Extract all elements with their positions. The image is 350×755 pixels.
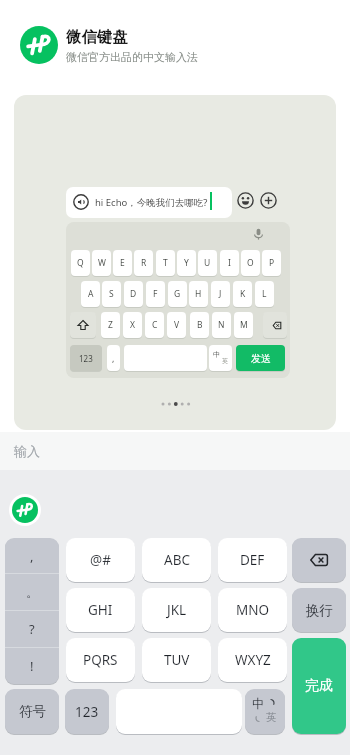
staticText: H <box>195 288 202 300</box>
button[interactable]: WXYZ <box>218 638 287 682</box>
button[interactable]: 。 <box>5 574 59 610</box>
button[interactable]: Q <box>71 250 90 276</box>
button[interactable]: ABC <box>142 538 211 582</box>
staticText: 中 <box>213 350 220 359</box>
staticText: ABC <box>164 551 190 569</box>
button[interactable]: N <box>212 312 231 338</box>
button[interactable]: MNO <box>218 588 287 632</box>
staticText: 微信键盘 <box>66 28 129 47</box>
staticText: I <box>228 257 231 269</box>
staticText: W <box>98 257 106 269</box>
button[interactable]: G <box>168 281 187 307</box>
button[interactable]: P <box>262 250 281 276</box>
button[interactable]: D <box>124 281 143 307</box>
button[interactable]: ? <box>5 611 59 647</box>
button[interactable]: PQRS <box>66 638 135 682</box>
staticText: U <box>204 257 211 269</box>
button[interactable]: I <box>220 250 239 276</box>
staticText: E <box>120 257 125 269</box>
staticText: 发送 <box>251 352 271 365</box>
staticText: WXYZ <box>235 651 271 669</box>
button[interactable]: , <box>107 345 120 371</box>
staticText: N <box>218 319 225 331</box>
button[interactable]: T <box>156 250 175 276</box>
staticText: MNO <box>236 601 270 619</box>
button[interactable]: O <box>241 250 260 276</box>
button[interactable]: DEF <box>218 538 287 582</box>
staticText: V <box>174 319 180 331</box>
staticText: Z <box>108 319 113 331</box>
staticText: 英 <box>222 357 228 365</box>
button[interactable]: 123 <box>65 689 109 734</box>
button[interactable]: @# <box>66 538 135 582</box>
button[interactable] <box>12 497 38 523</box>
button[interactable]: F <box>146 281 165 307</box>
button[interactable]: 换行 <box>292 588 346 632</box>
button[interactable]: K <box>233 281 252 307</box>
staticText: O <box>247 257 254 269</box>
button[interactable]: A <box>81 281 100 307</box>
button[interactable]: U <box>198 250 217 276</box>
staticText: T <box>163 257 168 269</box>
staticText: TUV <box>164 651 190 669</box>
button[interactable]: V <box>167 312 186 338</box>
button[interactable]: X <box>123 312 142 338</box>
button[interactable] <box>292 538 346 582</box>
button[interactable]: M <box>234 312 253 338</box>
staticText: @# <box>90 551 111 569</box>
staticText: 微信官方出品的中文输入法 <box>66 50 198 64</box>
button[interactable]: JKL <box>142 588 211 632</box>
button[interactable]: L <box>255 281 274 307</box>
staticText: , <box>112 352 115 364</box>
button[interactable]: J <box>211 281 230 307</box>
button[interactable] <box>263 312 287 338</box>
button[interactable]: Y <box>177 250 196 276</box>
staticText: S <box>109 288 114 300</box>
button[interactable] <box>70 312 96 338</box>
staticText: A <box>88 288 94 300</box>
button[interactable]: H <box>189 281 208 307</box>
button[interactable]: 符号 <box>5 689 59 734</box>
button[interactable]: , <box>5 538 59 573</box>
staticText: , <box>30 547 34 565</box>
button[interactable]: TUV <box>142 638 211 682</box>
button[interactable] <box>20 26 58 64</box>
staticText: 。 <box>26 584 39 600</box>
staticText: 123 <box>75 703 99 721</box>
button[interactable]: 发送 <box>236 345 285 371</box>
button[interactable]: 中 <box>209 345 232 371</box>
staticText: DEF <box>240 551 265 569</box>
button[interactable]: R <box>134 250 153 276</box>
staticText: GHI <box>88 601 113 619</box>
staticText: 123 <box>79 353 93 364</box>
staticText: 输入 <box>14 443 40 459</box>
button[interactable]: B <box>190 312 209 338</box>
staticText: 符号 <box>19 703 46 720</box>
button[interactable]: ! <box>5 648 59 684</box>
staticText: Y <box>184 257 189 269</box>
button[interactable]: , <box>5 538 59 684</box>
staticText: G <box>174 288 181 300</box>
staticText: 完成 <box>305 677 333 695</box>
staticText: 中 <box>252 696 265 712</box>
button[interactable]: Z <box>101 312 120 338</box>
staticText: F <box>153 288 158 300</box>
button[interactable]: C <box>145 312 164 338</box>
staticText: L <box>262 288 267 300</box>
staticText: J <box>219 288 222 300</box>
button[interactable]: 中 <box>245 689 285 734</box>
staticText: 英 <box>266 711 277 724</box>
button[interactable]: 完成 <box>292 638 346 734</box>
button[interactable] <box>116 689 242 734</box>
button[interactable]: S <box>102 281 121 307</box>
button[interactable]: W <box>92 250 111 276</box>
button[interactable]: E <box>113 250 132 276</box>
staticText: ! <box>30 657 34 675</box>
button[interactable]: 输入 <box>0 432 350 470</box>
staticText: JKL <box>167 601 187 619</box>
staticText: K <box>240 288 246 300</box>
staticText: hi Echo，今晚我们去哪吃? <box>95 196 208 209</box>
button[interactable]: 123 <box>70 345 102 371</box>
button[interactable]: GHI <box>66 588 135 632</box>
